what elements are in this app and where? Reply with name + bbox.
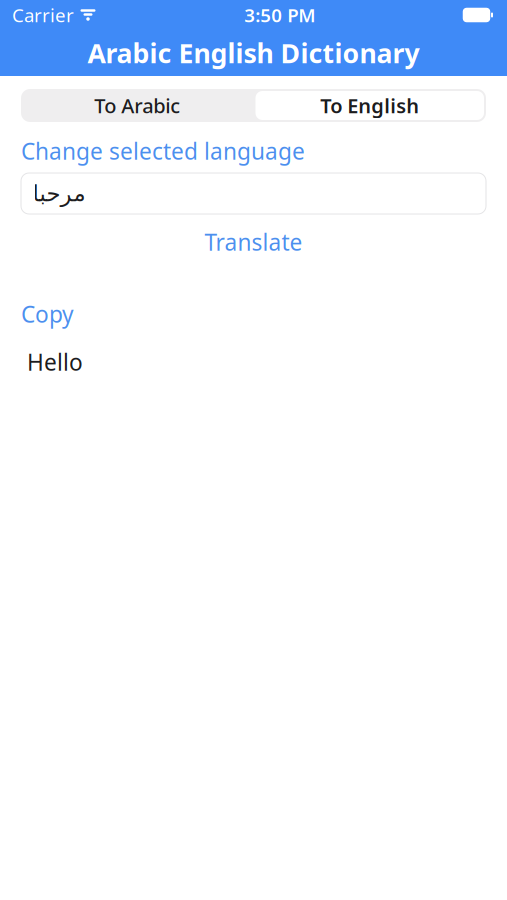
staticText: Arabic English Dictionary [87,35,419,71]
staticText: Copy [21,299,74,329]
staticText: Hello [27,347,83,377]
staticText: To English [320,92,419,119]
staticText: Carrier [12,3,74,27]
staticText: To Arabic [94,92,180,119]
button[interactable]: To Arabic [21,89,253,122]
button[interactable]: To English [253,89,486,122]
staticText: Change selected language [21,136,305,166]
staticText: مرحبا [32,181,85,206]
staticText: 3:50 PM [244,3,315,27]
button[interactable]: Translate [21,227,486,257]
staticText: Translate [204,227,302,257]
button[interactable]: Change selected language [21,136,305,166]
button[interactable]: Copy [21,299,74,329]
